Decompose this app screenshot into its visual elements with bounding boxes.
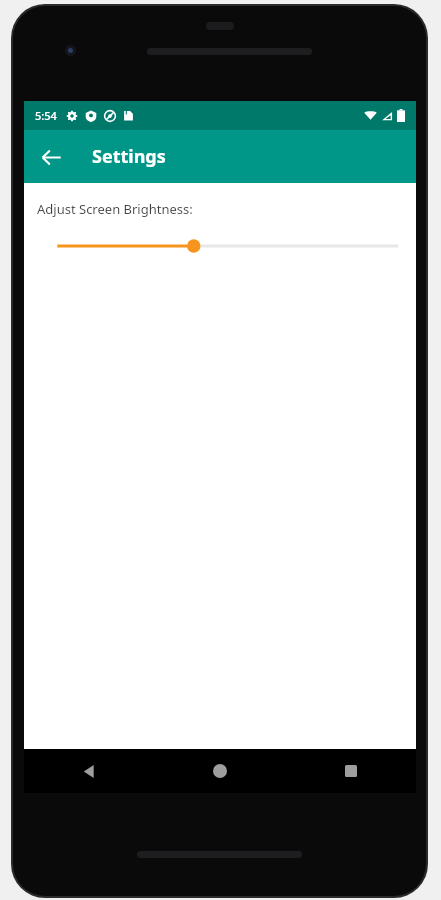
staticText: Settings — [92, 144, 166, 169]
staticText: Adjust Screen Brightness: — [37, 200, 193, 218]
button[interactable]: Home — [154, 749, 285, 793]
button[interactable]: Screen brightness slider — [24, 231, 416, 261]
button[interactable]: Recent apps — [285, 749, 416, 793]
staticText: 5:54 — [35, 108, 57, 123]
button[interactable]: Back — [24, 749, 154, 793]
button[interactable]: Back — [28, 134, 74, 180]
